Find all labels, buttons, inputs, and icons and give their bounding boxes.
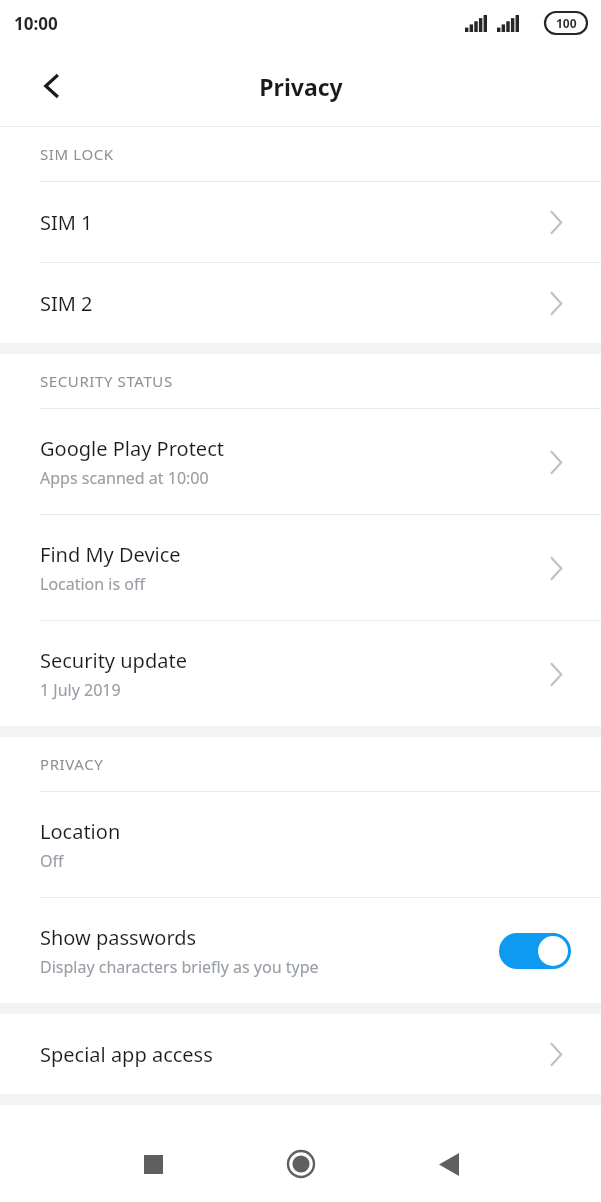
- staticText: Location: [40, 818, 121, 845]
- button[interactable]: Security update: [0, 621, 601, 726]
- button[interactable]: Show passwords: [0, 898, 601, 1003]
- button[interactable]: Show passwords toggle: [499, 933, 571, 969]
- staticText: Show passwords: [40, 924, 197, 951]
- staticText: 1 July 2019: [40, 679, 121, 701]
- staticText: Special app access: [40, 1041, 541, 1068]
- button[interactable]: Home: [273, 1136, 329, 1192]
- staticText: Google Play Protect: [40, 435, 224, 462]
- staticText: Off: [40, 850, 64, 872]
- button[interactable]: Back: [26, 60, 78, 112]
- button[interactable]: SIM 1: [0, 182, 601, 262]
- staticText: Apps scanned at 10:00: [40, 467, 209, 489]
- button[interactable]: SIM 2: [0, 263, 601, 343]
- staticText: SIM 2: [40, 290, 541, 317]
- button[interactable]: Find My Device: [0, 515, 601, 620]
- staticText: SECURITY STATUS: [40, 371, 173, 391]
- staticText: 100: [556, 15, 577, 31]
- button[interactable]: Special app access: [0, 1014, 601, 1094]
- staticText: PRIVACY: [40, 754, 104, 774]
- staticText: Security update: [40, 647, 187, 674]
- button[interactable]: Back: [421, 1136, 477, 1192]
- staticText: Privacy: [259, 71, 343, 102]
- staticText: SIM LOCK: [40, 144, 114, 164]
- button[interactable]: Google Play Protect: [0, 409, 601, 514]
- staticText: SIM 1: [40, 209, 541, 236]
- button[interactable]: Recent apps: [125, 1136, 181, 1192]
- staticText: Display characters briefly as you type: [40, 956, 319, 978]
- staticText: Location is off: [40, 573, 145, 595]
- staticText: 10:00: [14, 12, 58, 35]
- staticText: Find My Device: [40, 541, 181, 568]
- button[interactable]: Location: [0, 792, 601, 897]
